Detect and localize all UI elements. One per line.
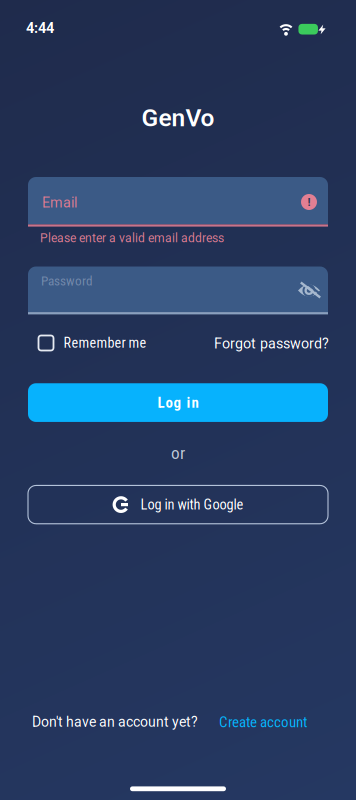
button[interactable]: Email	[28, 177, 328, 227]
button[interactable]: Password	[28, 266, 328, 314]
staticText: 4:44	[26, 19, 54, 36]
staticText: Log in	[157, 394, 198, 411]
staticText: GenVo	[141, 104, 214, 132]
staticText: Remember me	[63, 335, 146, 351]
button[interactable]: Forgot password?	[129, 335, 329, 352]
staticText: Password	[41, 273, 93, 289]
staticText: Email	[42, 194, 77, 211]
button[interactable]: Remember me	[37, 334, 337, 351]
button[interactable]: Log in with Google	[28, 485, 328, 524]
staticText: Please enter a valid email address	[40, 231, 224, 245]
staticText: Create account	[219, 713, 307, 731]
staticText: !	[307, 195, 310, 209]
staticText: or	[171, 443, 185, 463]
staticText: Forgot password?	[214, 335, 329, 352]
button[interactable]: Log in	[28, 383, 328, 422]
staticText: Log in with Google	[140, 496, 243, 513]
staticText: Don't have an account yet?	[32, 714, 198, 730]
button[interactable]: Create account	[198, 713, 307, 731]
